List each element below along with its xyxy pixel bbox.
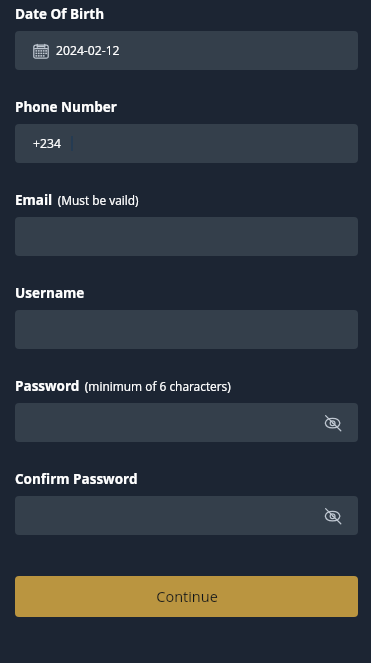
button[interactable]: 2024-02-12: [15, 31, 358, 70]
button[interactable]: Show password: [15, 403, 358, 442]
staticText: Username: [15, 284, 85, 302]
staticText: 2024-02-12: [56, 42, 120, 59]
staticText: Continue: [156, 587, 218, 607]
staticText: Date Of Birth: [15, 5, 105, 23]
staticText: Confirm Password: [15, 470, 138, 488]
button[interactable]: +234: [15, 124, 358, 163]
staticText: Email (Must be vaild): [15, 191, 139, 209]
button[interactable]: Show confirm password: [319, 502, 347, 530]
staticText: +234: [33, 135, 61, 152]
staticText: Phone Number: [15, 98, 117, 116]
button[interactable]: Show confirm password: [15, 496, 358, 535]
button[interactable]: Show password: [319, 409, 347, 437]
button[interactable]: Continue: [15, 576, 358, 617]
staticText: Password (minimum of 6 characters): [15, 377, 231, 395]
